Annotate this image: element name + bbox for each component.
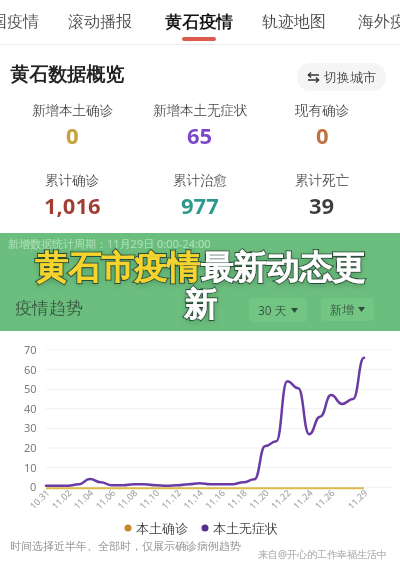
staticText: 现有确诊 xyxy=(295,102,349,119)
staticText: 滚动播报 xyxy=(68,12,132,32)
staticText: 黄石市疫情最新动态更 xyxy=(35,247,365,289)
staticText: 轨迹地图 xyxy=(262,12,326,32)
staticText: 黄石数据概览 xyxy=(10,63,124,87)
button[interactable]: 全国疫情 xyxy=(0,0,40,44)
button[interactable]: 30 天 xyxy=(249,298,307,322)
staticText: 全国疫情 xyxy=(0,12,39,32)
staticText: 新增本土无症状 xyxy=(153,102,248,119)
button[interactable]: 切换城市 xyxy=(297,63,386,91)
staticText: 新 xyxy=(184,284,217,326)
button[interactable]: 黄石疫情 xyxy=(161,0,237,44)
staticText: 切换城市 xyxy=(324,69,376,85)
staticText: 本土无症状 xyxy=(213,520,278,536)
staticText: 时间选择近半年、全部时，仅展示确诊病例趋势 xyxy=(10,539,241,553)
staticText: 新增本土确诊 xyxy=(32,102,113,119)
staticText: 0 xyxy=(316,120,329,150)
staticText: 50 xyxy=(24,381,37,396)
staticText: 30 xyxy=(24,420,37,435)
staticText: 977 xyxy=(181,190,219,220)
staticText: 39 xyxy=(309,190,335,220)
staticText: 本土确诊 xyxy=(136,520,188,536)
staticText: 疫情趋势 xyxy=(15,298,83,319)
staticText: 新增 xyxy=(330,302,354,317)
staticText: 新 xyxy=(184,284,217,326)
staticText: 65 xyxy=(187,120,213,150)
staticText: 累计死亡 xyxy=(295,172,349,189)
staticText: 60 xyxy=(24,362,37,377)
staticText: 10 xyxy=(24,460,37,475)
staticText: 0 xyxy=(66,120,79,150)
staticText: 黄石疫情 xyxy=(165,12,233,33)
button[interactable]: 滚动播报 xyxy=(64,0,136,44)
staticText: 70 xyxy=(24,342,37,357)
staticText: 1,016 xyxy=(44,190,101,220)
staticText: 新增数据统计周期：11月29日 0:00-24:00 xyxy=(8,236,211,251)
button[interactable]: 轨迹地图 xyxy=(258,0,330,44)
staticText: 20 xyxy=(24,440,37,455)
staticText: 黄石市疫情最新动态更 xyxy=(35,247,365,289)
staticText: 30 天 xyxy=(258,302,287,318)
staticText: 累计治愈 xyxy=(173,172,227,189)
staticText: 累计确诊 xyxy=(45,172,99,189)
staticText: 海外疫情 xyxy=(358,12,400,32)
staticText: 0 xyxy=(30,479,37,494)
button[interactable]: 海外疫情 xyxy=(354,0,400,44)
staticText: 来自@开心的工作幸福生活中 xyxy=(258,547,387,561)
staticText: 40 xyxy=(24,401,37,416)
button[interactable]: 新增 xyxy=(321,298,374,321)
